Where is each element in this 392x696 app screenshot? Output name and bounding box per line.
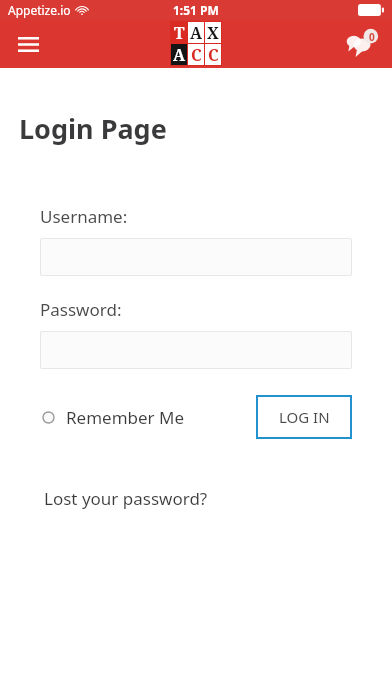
button[interactable]: Menu bbox=[6, 22, 50, 66]
staticText: Lost your password? bbox=[44, 487, 208, 510]
staticText: A bbox=[173, 44, 186, 65]
staticText: A bbox=[190, 22, 203, 43]
staticText: T bbox=[174, 22, 185, 43]
button[interactable]: Lost your password? bbox=[44, 487, 208, 510]
staticText: Appetize.io bbox=[8, 2, 71, 18]
staticText: Remember Me bbox=[66, 406, 185, 429]
button[interactable]: Tax and Acc home bbox=[170, 21, 222, 66]
button[interactable]: Remember Me bbox=[40, 400, 187, 435]
staticText: C bbox=[208, 44, 219, 65]
staticText: X bbox=[207, 22, 219, 43]
button[interactable]: Messages bbox=[340, 21, 386, 67]
button[interactable]: Text input bbox=[40, 238, 352, 276]
staticText: Password: bbox=[40, 298, 122, 321]
button[interactable]: Text input bbox=[40, 331, 352, 369]
staticText: LOG IN bbox=[279, 407, 330, 427]
staticText: 0 bbox=[369, 30, 375, 44]
staticText: C bbox=[191, 44, 202, 65]
staticText: Login Page bbox=[19, 110, 167, 147]
staticText: Username: bbox=[40, 205, 128, 228]
button[interactable]: LOG IN bbox=[256, 395, 352, 439]
staticText: 1:51 PM bbox=[173, 2, 219, 18]
